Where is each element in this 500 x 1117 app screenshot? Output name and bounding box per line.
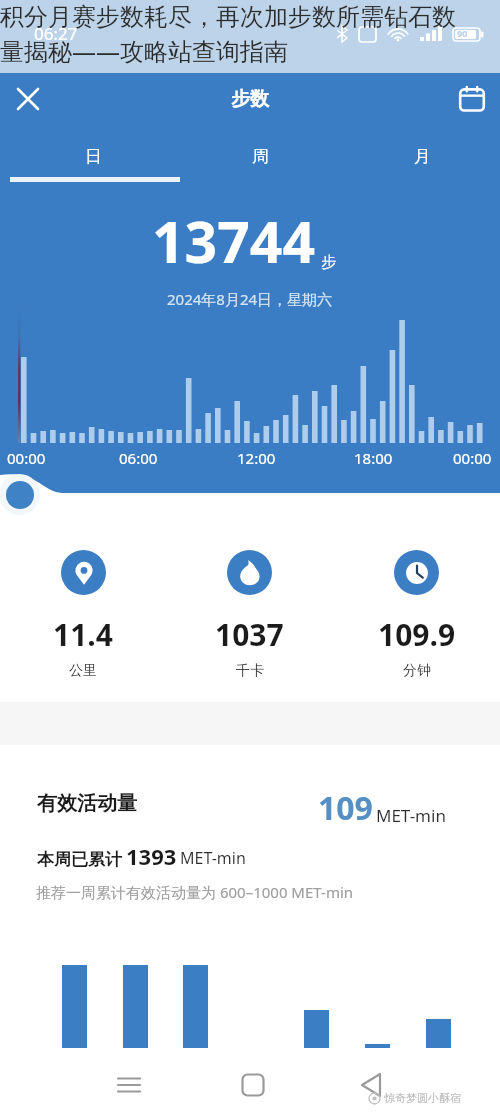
staticText: 本周已累计 <box>37 849 122 870</box>
staticText: 周 <box>252 146 269 167</box>
staticText: 13744 <box>152 202 316 280</box>
staticText: 109.9 <box>378 614 456 655</box>
staticText: 有效活动量 <box>37 791 137 816</box>
staticText: 日 <box>85 146 102 167</box>
staticText: 00:00 <box>453 448 492 468</box>
button[interactable]: Calendar <box>444 73 500 125</box>
button[interactable]: Expand chart <box>6 481 34 509</box>
staticText: 90 <box>457 27 468 39</box>
staticText: 00:00 <box>7 448 46 468</box>
button[interactable]: 日 <box>10 125 176 185</box>
staticText: 1393 <box>126 841 177 871</box>
staticText: 分钟 <box>403 662 431 680</box>
staticText: 惊奇梦圆小酥宿 <box>384 1091 461 1105</box>
button[interactable]: 1037 <box>166 550 333 680</box>
staticText: 06:00 <box>119 448 158 468</box>
staticText: 步数 <box>231 87 269 111</box>
staticText: MET-min <box>180 847 246 869</box>
staticText: 步 <box>321 253 336 272</box>
staticText: 千卡 <box>236 662 264 680</box>
staticText: MET-min <box>376 804 446 827</box>
button[interactable]: 109.9 <box>333 550 500 680</box>
button[interactable]: Back <box>347 1063 397 1107</box>
staticText: 1037 <box>215 614 284 655</box>
staticText: 06:27 <box>34 22 78 45</box>
staticText: 月 <box>414 146 431 167</box>
button[interactable]: 周 <box>177 125 343 185</box>
button[interactable]: 11.4 <box>0 550 166 680</box>
staticText: 12:00 <box>237 448 276 468</box>
button[interactable]: Close <box>0 73 56 125</box>
button[interactable]: 月 <box>344 125 500 185</box>
staticText: 推荐一周累计有效活动量为 600–1000 MET-min <box>36 882 354 902</box>
staticText: 109 <box>318 786 373 830</box>
button[interactable]: Home <box>228 1063 278 1107</box>
staticText: 18:00 <box>354 448 393 468</box>
staticText: 积分月赛步数耗尽，再次加步数所需钻石数 <box>0 2 456 32</box>
staticText: 2024年8月24日，星期六 <box>167 289 333 309</box>
staticText: 公里 <box>69 662 97 680</box>
button[interactable]: Recent apps <box>104 1063 154 1107</box>
staticText: 量揭秘——攻略站查询指南 <box>0 34 288 67</box>
staticText: 11.4 <box>53 614 113 655</box>
